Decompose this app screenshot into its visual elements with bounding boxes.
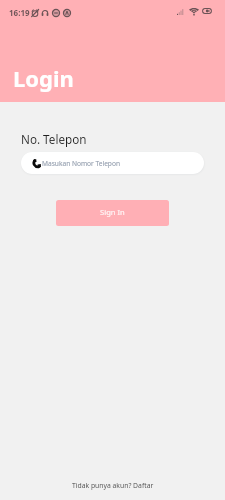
button[interactable]: Sign In (56, 200, 169, 226)
staticText: Login (13, 63, 74, 93)
button[interactable]: Tidak punya akun? Daftar (72, 481, 154, 490)
other: Phone (32, 159, 41, 168)
staticText: 16:19 (9, 7, 30, 18)
staticText: No. Telepon (21, 131, 87, 147)
button[interactable]: Phone (21, 152, 204, 174)
staticText: Tidak punya akun? Daftar (72, 481, 154, 490)
staticText: Sign In (100, 207, 125, 217)
staticText: Masukan Nomor Telepon (42, 159, 120, 168)
